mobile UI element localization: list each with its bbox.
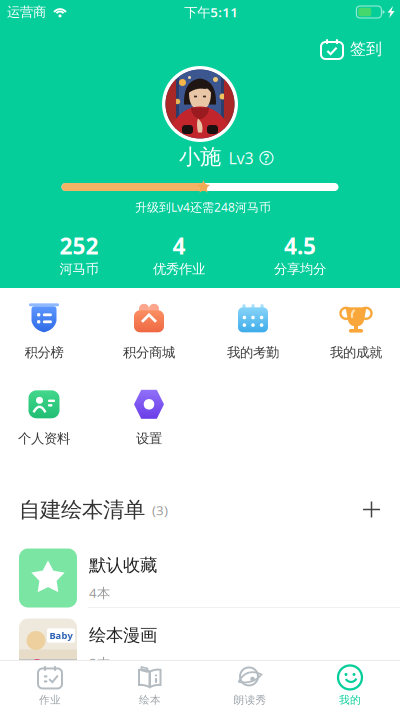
staticText: 小施: [179, 144, 221, 170]
staticText: 我的考勤: [227, 344, 279, 361]
staticText: 我的成就: [330, 344, 382, 361]
button[interactable]: 我的考勤: [204, 301, 302, 363]
staticText: 朗读秀: [233, 693, 266, 706]
staticText: Baby: [49, 629, 72, 642]
button[interactable]: 作业: [0, 661, 100, 711]
button[interactable]: 我的成就: [307, 301, 400, 363]
staticText: 默认收藏: [89, 554, 157, 576]
staticText: ?: [263, 150, 269, 166]
staticText: 升级到Lv4还需248河马币: [135, 199, 271, 215]
staticText: 河马币: [59, 261, 98, 277]
staticText: 作业: [39, 693, 61, 706]
button[interactable]: 签到: [314, 35, 388, 63]
staticText: 优秀作业: [153, 261, 205, 277]
staticText: 4.5: [284, 231, 316, 261]
staticText: 252: [59, 231, 98, 261]
button[interactable]: 新建清单: [355, 493, 388, 526]
button[interactable]: 绘本: [100, 661, 200, 711]
staticText: 下午5:11: [184, 3, 238, 21]
staticText: 2本: [89, 654, 110, 671]
button[interactable]: 个人资料: [0, 387, 93, 449]
staticText: 4: [172, 231, 185, 261]
button[interactable]: 设置: [100, 387, 198, 449]
button[interactable]: 默认收藏: [0, 543, 400, 613]
staticText: 分享均分: [274, 261, 326, 277]
staticText: 积分商城: [123, 344, 175, 361]
staticText: 积分榜: [24, 344, 63, 361]
staticText: 4本: [89, 584, 110, 601]
button[interactable]: 积分榜: [0, 301, 93, 363]
staticText: Lv3: [228, 147, 253, 169]
button[interactable]: 朗读秀: [200, 661, 300, 711]
staticText: 个人资料: [18, 430, 70, 447]
staticText: (3): [152, 501, 168, 519]
staticText: 运营商: [7, 4, 46, 20]
staticText: 绘本: [139, 693, 161, 706]
button[interactable]: 积分商城: [100, 301, 198, 363]
staticText: 签到: [350, 39, 382, 59]
staticText: 绘本漫画: [89, 624, 157, 646]
staticText: 自建绘本清单: [19, 497, 145, 523]
staticText: 设置: [136, 430, 162, 447]
staticText: 我的: [339, 693, 361, 706]
button[interactable]: 我的: [300, 661, 400, 711]
button[interactable]: Baby: [0, 613, 400, 683]
